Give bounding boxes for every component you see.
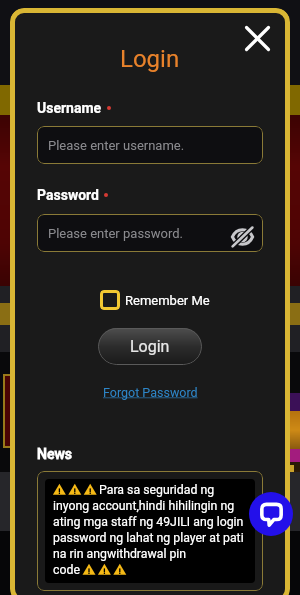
staticText: Password <box>37 187 99 203</box>
staticText: Please enter password. <box>48 226 184 241</box>
button[interactable]: Show password <box>229 223 255 249</box>
staticText: password ng lahat ng player at pati <box>53 531 244 545</box>
staticText: Para sa seguridad ng <box>99 483 215 497</box>
staticText: Remember Me <box>125 293 210 308</box>
staticText: inyong account,hindi hihilingin ng <box>53 499 235 513</box>
staticText: code <box>53 563 80 577</box>
staticText: ating mga staff ng 49JILI ang login <box>53 515 244 529</box>
staticText: Login <box>130 337 170 356</box>
button[interactable]: Please enter username. <box>37 126 263 164</box>
button[interactable]: Close <box>240 21 274 55</box>
staticText: Please enter username. <box>48 138 185 153</box>
button[interactable]: Login <box>98 328 202 365</box>
button[interactable]: Remember Me <box>100 290 210 310</box>
staticText: Login <box>120 45 180 73</box>
staticText: News <box>37 446 73 462</box>
staticText: Username <box>37 100 102 116</box>
button[interactable]: Forgot Password <box>103 385 198 400</box>
button[interactable]: Chat support <box>249 492 293 536</box>
button[interactable]: Please enter password. <box>37 214 263 252</box>
staticText: na rin angwithdrawal pin <box>53 547 187 561</box>
